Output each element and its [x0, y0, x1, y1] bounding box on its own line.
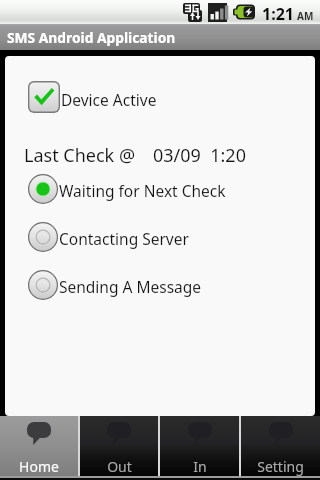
button[interactable]: Sending A Message	[28, 270, 202, 300]
staticText: Device Active	[61, 89, 157, 110]
button[interactable]: Waiting for Next Check	[28, 174, 226, 204]
staticText: Last Check @	[24, 143, 136, 168]
staticText: Sending A Message	[59, 276, 202, 297]
staticText: SMS Android Application	[7, 28, 176, 47]
button[interactable]: Home	[0, 416, 78, 476]
button[interactable]: Contacting Server	[28, 222, 189, 252]
button[interactable]: Device Active	[28, 81, 157, 113]
staticText: Waiting for Next Check	[59, 180, 226, 201]
staticText: AM	[297, 9, 314, 23]
button[interactable]: Out	[80, 416, 158, 476]
staticText: 03/09 1:20	[153, 143, 246, 168]
staticText: Setting	[257, 457, 304, 476]
staticText: Contacting Server	[59, 228, 189, 249]
staticText: In	[193, 457, 207, 476]
button[interactable]: Setting	[241, 416, 320, 476]
staticText: 1:21	[262, 3, 294, 25]
staticText: Home	[19, 457, 59, 476]
button[interactable]: In	[160, 416, 239, 476]
staticText: Out	[107, 457, 132, 476]
